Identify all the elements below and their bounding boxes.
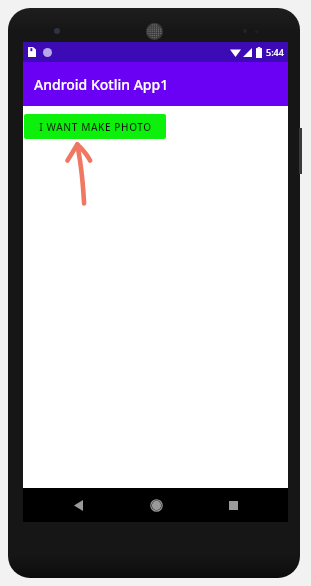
button[interactable]: I WANT MAKE PHOTO: [24, 114, 166, 139]
button[interactable]: Back: [56, 488, 100, 522]
button[interactable]: Home: [134, 488, 178, 522]
staticText: I WANT MAKE PHOTO: [39, 120, 152, 134]
button[interactable]: Recent apps: [211, 488, 255, 522]
staticText: Android Kotlin App1: [34, 75, 169, 94]
staticText: 5:44: [266, 46, 284, 58]
